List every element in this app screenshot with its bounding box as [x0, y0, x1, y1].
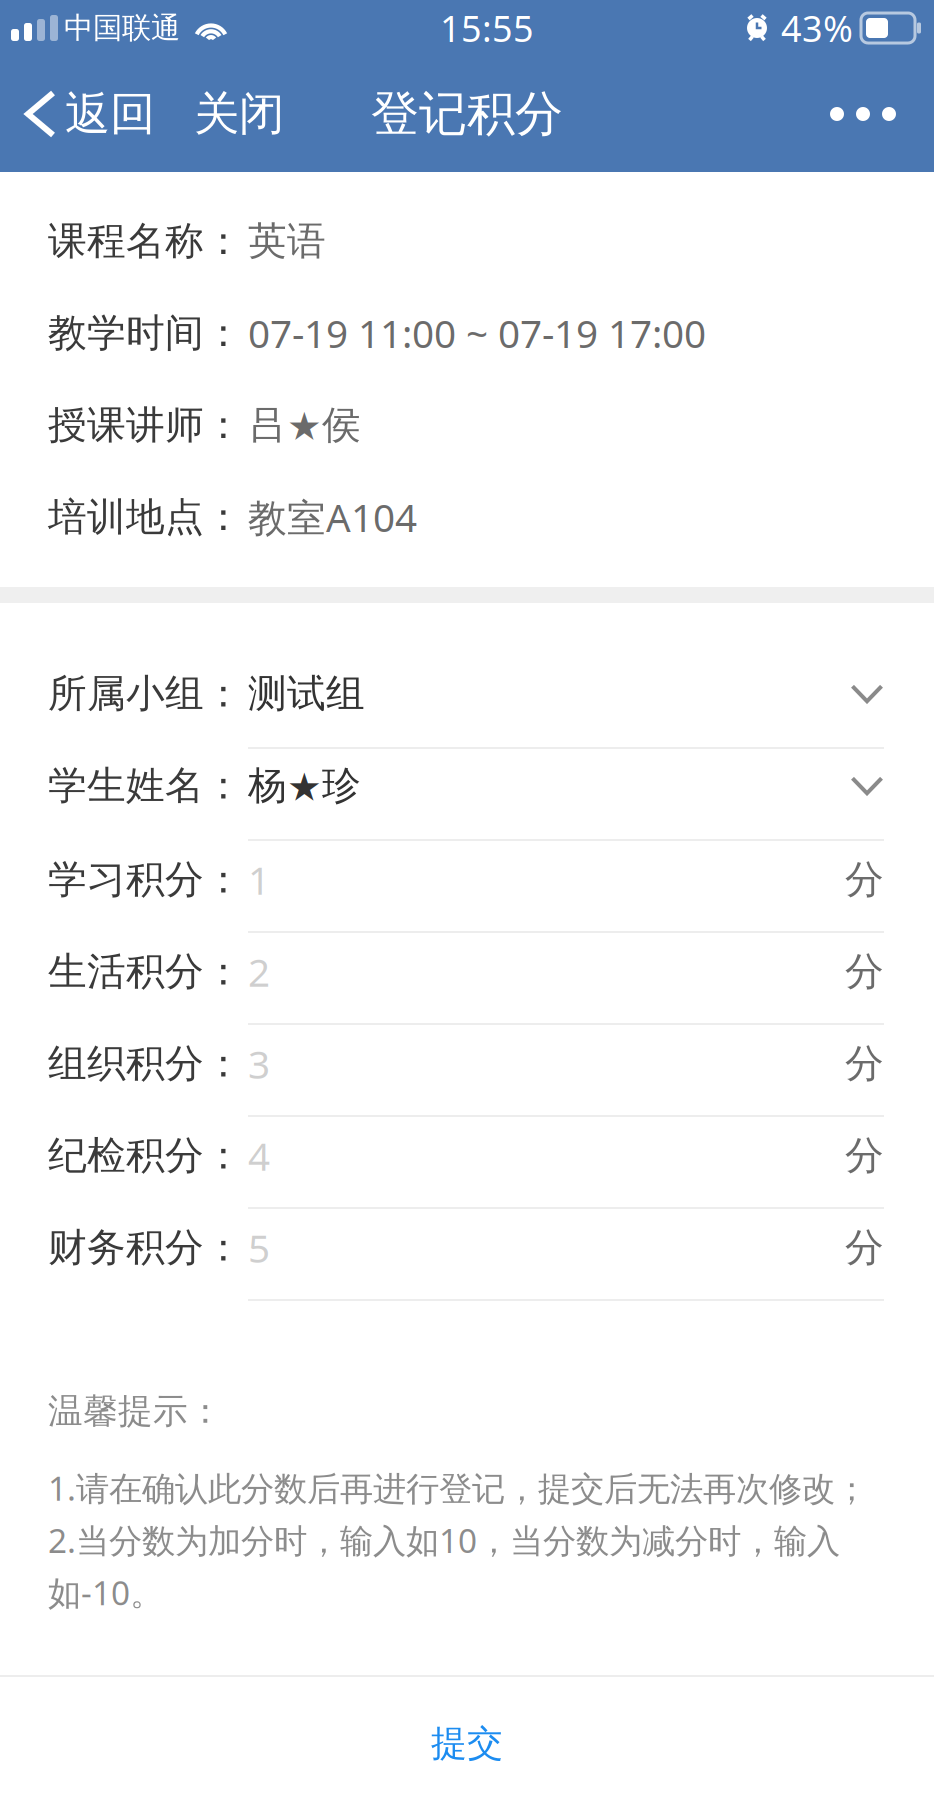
- staticText: 分: [845, 948, 884, 995]
- staticText: 1: [248, 854, 270, 905]
- staticText: 杨★珍: [248, 762, 361, 809]
- staticText: 登记积分: [371, 84, 563, 143]
- staticText: 提交: [431, 1721, 503, 1766]
- staticText: 学生姓名：: [48, 762, 243, 809]
- staticText: 如-10。: [48, 1570, 163, 1614]
- staticText: 财务积分：: [48, 1224, 243, 1271]
- staticText: 英语: [248, 217, 326, 265]
- staticText: 07-19 11:00 ~ 07-19 17:00: [248, 307, 706, 359]
- staticText: 教学时间：: [48, 309, 243, 357]
- staticText: 吕★侯: [248, 401, 361, 449]
- staticText: 返回: [65, 86, 155, 142]
- staticText: 测试组: [248, 670, 365, 717]
- staticText: 2: [248, 946, 270, 997]
- staticText: 学习积分：: [48, 856, 243, 903]
- staticText: 43%: [781, 4, 853, 52]
- staticText: 分: [845, 1040, 884, 1087]
- staticText: 1.请在确认此分数后再进行登记，提交后无法再次修改；: [48, 1466, 868, 1510]
- staticText: 课程名称：: [48, 217, 243, 265]
- staticText: 纪检积分：: [48, 1132, 243, 1179]
- button[interactable]: 学生姓名：: [48, 749, 884, 841]
- staticText: 分: [845, 1132, 884, 1179]
- staticText: 培训地点：: [48, 493, 243, 541]
- button[interactable]: 关闭: [167, 56, 308, 172]
- staticText: 授课讲师：: [48, 401, 243, 449]
- staticText: 关闭: [194, 86, 284, 142]
- staticText: 组织积分：: [48, 1040, 243, 1087]
- button[interactable]: 提交: [0, 1677, 934, 1810]
- staticText: 4: [248, 1130, 270, 1181]
- staticText: 生活积分：: [48, 948, 243, 995]
- staticText: 温馨提示：: [48, 1390, 223, 1433]
- staticText: 15:55: [440, 4, 534, 52]
- staticText: 中国联通: [64, 10, 180, 46]
- staticText: 2.当分数为加分时，输入如10，当分数为减分时，输入: [48, 1518, 840, 1562]
- staticText: 所属小组：: [48, 670, 243, 717]
- staticText: 分: [845, 1224, 884, 1271]
- staticText: 5: [248, 1222, 270, 1273]
- staticText: 教室A104: [248, 491, 417, 543]
- button[interactable]: 所属小组：: [48, 657, 884, 749]
- button[interactable]: 返回: [0, 56, 167, 172]
- staticText: 3: [248, 1038, 270, 1089]
- staticText: 分: [845, 856, 884, 903]
- button[interactable]: More options: [800, 56, 934, 172]
